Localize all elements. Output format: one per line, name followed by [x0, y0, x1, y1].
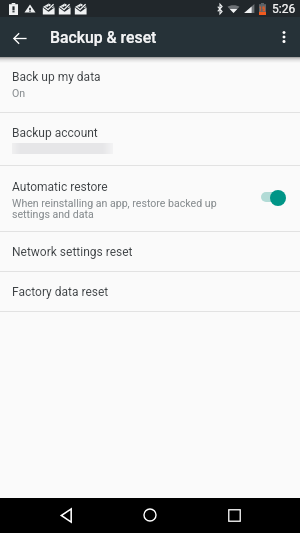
staticText: Factory data reset [12, 285, 109, 299]
button[interactable]: Backup account [0, 113, 300, 165]
button[interactable]: Back [42, 498, 90, 533]
button[interactable]: More options [268, 17, 300, 57]
staticText: Back up my data [12, 70, 101, 84]
staticText: Automatic restore [12, 180, 108, 194]
button[interactable]: Automatic restore [0, 166, 300, 231]
button[interactable]: Factory data reset [0, 272, 300, 311]
button[interactable]: Back up my data [0, 57, 300, 112]
button[interactable]: Recents [210, 498, 258, 533]
button[interactable]: Automatic restore [260, 188, 286, 206]
staticText: On [12, 87, 26, 99]
staticText: When reinstalling an app, restore backed… [12, 197, 227, 221]
button[interactable]: Home [126, 498, 174, 533]
staticText: Backup & reset [50, 28, 157, 47]
button[interactable]: Network settings reset [0, 232, 300, 271]
button[interactable]: Back [7, 17, 33, 57]
staticText: Backup account [12, 126, 98, 140]
staticText: 5:26 [272, 2, 296, 16]
staticText: Network settings reset [12, 245, 133, 259]
